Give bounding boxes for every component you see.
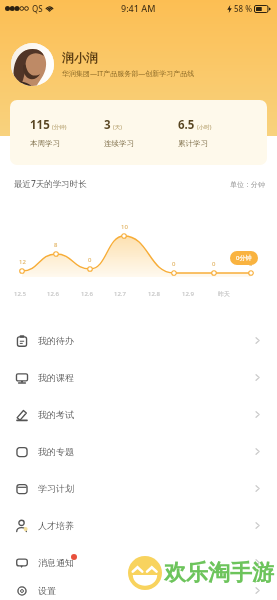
staticText: 58 % bbox=[234, 3, 253, 14]
staticText: 12 bbox=[19, 258, 26, 266]
staticText: 12.8 bbox=[148, 290, 160, 298]
staticText: 润小润 bbox=[62, 50, 98, 65]
staticText: 0 bbox=[249, 260, 253, 268]
staticText: 10 bbox=[121, 223, 128, 231]
staticText: 0 bbox=[212, 260, 216, 268]
staticText: 设置 bbox=[38, 585, 56, 596]
staticText: 115 bbox=[30, 117, 50, 133]
staticText: 消息通知 bbox=[38, 557, 74, 568]
staticText: 欢乐淘手游 bbox=[164, 559, 274, 587]
button[interactable]: 我的待办 bbox=[0, 322, 277, 359]
button[interactable]: 人才培养 bbox=[0, 507, 277, 544]
staticText: 最近7天的学习时长 bbox=[14, 178, 87, 190]
staticText: 9:41 AM bbox=[121, 2, 156, 14]
staticText: 本周学习 bbox=[30, 139, 60, 148]
staticText: 我的待办 bbox=[38, 335, 74, 346]
button[interactable]: 115 bbox=[10, 100, 267, 165]
staticText: 0 bbox=[88, 256, 92, 264]
staticText: 12.5 bbox=[14, 290, 26, 298]
staticText: 人才培养 bbox=[38, 520, 74, 531]
staticText: 3 bbox=[104, 117, 111, 133]
staticText: 12.6 bbox=[47, 290, 59, 298]
staticText: 华润集团—IT产品服务部—创新学习产品线 bbox=[62, 69, 195, 79]
staticText: 12.9 bbox=[182, 290, 194, 298]
button[interactable]: 我的专题 bbox=[0, 433, 277, 470]
button[interactable]: 我的课程 bbox=[0, 359, 277, 396]
staticText: 12.7 bbox=[114, 290, 126, 298]
staticText: 连续学习 bbox=[104, 139, 134, 148]
button[interactable]: 0分钟 bbox=[230, 251, 258, 265]
staticText: 累计学习 bbox=[178, 139, 208, 148]
staticText: (分钟) bbox=[52, 123, 67, 131]
staticText: (小时) bbox=[197, 123, 212, 131]
staticText: 6.5 bbox=[178, 117, 195, 133]
staticText: 我的专题 bbox=[38, 446, 74, 457]
staticText: 8 bbox=[54, 241, 58, 249]
button[interactable]: 我的考试 bbox=[0, 396, 277, 433]
staticText: (天) bbox=[113, 123, 122, 131]
button[interactable]: 学习计划 bbox=[0, 470, 277, 507]
button[interactable]: 润小润 bbox=[11, 43, 277, 86]
button[interactable]: 消息通知 bbox=[0, 544, 277, 581]
staticText: 单位：分钟 bbox=[230, 180, 265, 189]
staticText: 0 bbox=[172, 260, 176, 268]
staticText: 12.6 bbox=[81, 290, 93, 298]
staticText: 0分钟 bbox=[236, 254, 252, 262]
button[interactable]: 设置 bbox=[0, 581, 277, 600]
staticText: QS bbox=[32, 3, 43, 14]
staticText: 我的考试 bbox=[38, 409, 74, 420]
staticText: 我的课程 bbox=[38, 372, 74, 383]
staticText: 学习计划 bbox=[38, 483, 74, 494]
staticText: 昨天 bbox=[218, 290, 230, 298]
